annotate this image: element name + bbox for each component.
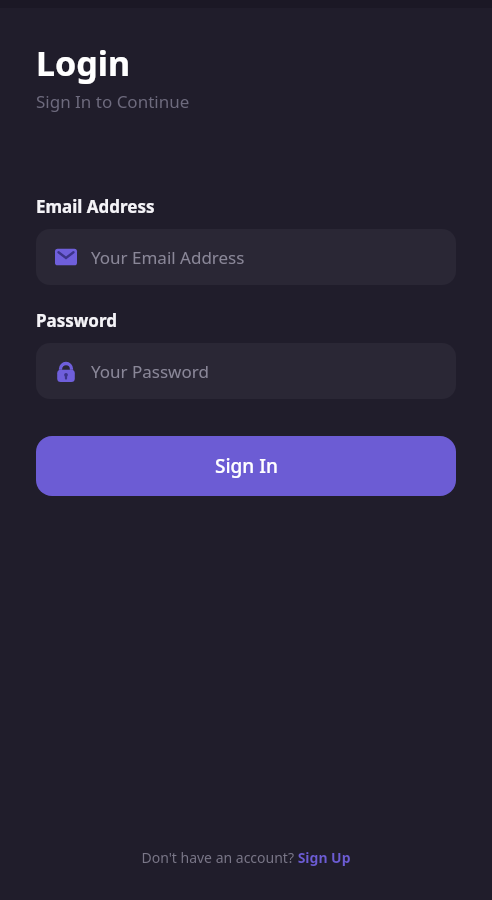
other: Email bbox=[55, 246, 77, 268]
button[interactable]: Sign In bbox=[36, 436, 456, 496]
staticText: Sign In to Continue bbox=[36, 90, 190, 113]
staticText: Login bbox=[36, 40, 131, 86]
button[interactable]: Email bbox=[36, 229, 456, 285]
staticText: Your Email Address bbox=[91, 246, 245, 269]
staticText: Password bbox=[36, 309, 117, 332]
other: Password bbox=[55, 360, 77, 382]
staticText: Don't have an account? Sign Up bbox=[141, 848, 351, 867]
button[interactable]: Don't have an account? Sign Up bbox=[141, 848, 351, 867]
button[interactable]: Password bbox=[36, 343, 456, 399]
staticText: Sign In bbox=[215, 453, 278, 479]
staticText: Your Password bbox=[91, 360, 209, 383]
staticText: Email Address bbox=[36, 195, 155, 218]
